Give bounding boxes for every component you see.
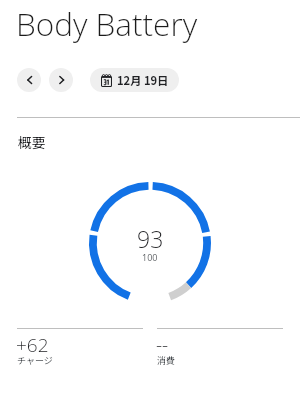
staticText: 93 [137, 223, 164, 254]
staticText: 消費 [157, 354, 176, 367]
staticText: Body Battery [16, 2, 198, 45]
staticText: 100 [142, 251, 158, 263]
button[interactable]: Previous day [17, 68, 41, 92]
button[interactable]: 12月 19日 [90, 68, 179, 92]
staticText: 12月 19日 [117, 72, 169, 88]
staticText: 概要 [18, 132, 46, 152]
staticText: +62 [16, 332, 49, 358]
staticText: -- [156, 332, 169, 358]
staticText: チャージ [17, 354, 53, 367]
button[interactable]: Next day [49, 68, 73, 92]
